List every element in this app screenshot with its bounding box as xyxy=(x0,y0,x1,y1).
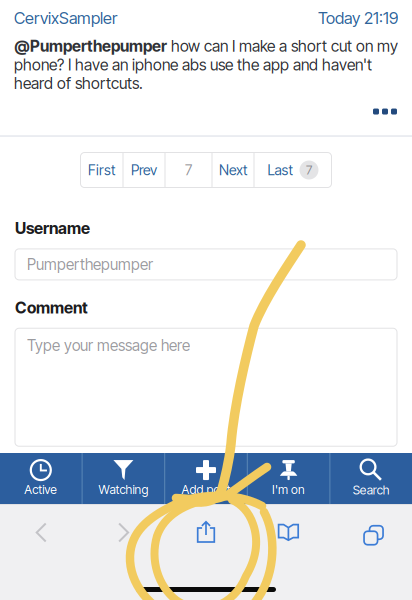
staticText: Next xyxy=(219,161,247,179)
staticText: Active xyxy=(24,482,57,497)
button[interactable]: Share xyxy=(165,504,247,560)
staticText: Search xyxy=(353,483,390,497)
staticText: Comment xyxy=(15,298,88,317)
staticText: First xyxy=(88,161,115,179)
staticText: Pumperthepumper xyxy=(27,255,153,274)
button[interactable]: Active xyxy=(0,453,82,504)
staticText: 7 xyxy=(306,163,312,177)
staticText: @Pumperthepumper how can I make a short … xyxy=(14,37,398,92)
button[interactable]: Tabs xyxy=(330,504,412,560)
button[interactable]: Add post xyxy=(165,453,247,504)
button[interactable]: Back xyxy=(0,504,82,560)
staticText: CervixSampler xyxy=(14,8,117,28)
button[interactable]: I'm on xyxy=(248,453,329,504)
button[interactable]: Prev xyxy=(123,152,164,187)
button[interactable]: CervixSampler xyxy=(14,8,117,28)
button[interactable]: Last xyxy=(254,152,331,187)
button[interactable]: More options xyxy=(366,101,404,121)
staticText: Watching xyxy=(98,482,148,497)
staticText: I'm on xyxy=(272,482,305,497)
button[interactable]: Bookmarks xyxy=(247,504,330,560)
button[interactable]: Search xyxy=(330,453,412,504)
staticText: Username xyxy=(15,218,90,238)
staticText: Today 21:19 xyxy=(318,8,398,28)
button[interactable]: Next xyxy=(212,152,253,187)
button[interactable]: Watching xyxy=(83,453,164,504)
button[interactable]: First xyxy=(80,152,122,187)
staticText: Prev xyxy=(131,161,157,179)
button[interactable]: Forward xyxy=(82,504,165,560)
staticText: 7 xyxy=(185,161,192,179)
staticText: Last xyxy=(267,161,292,179)
staticText: Add post xyxy=(181,482,230,497)
staticText: Type your message here xyxy=(27,336,190,355)
